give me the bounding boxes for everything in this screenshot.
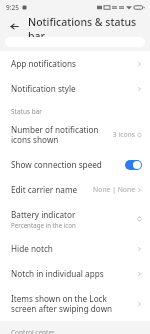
button[interactable]: Items shown on the Lock screen after swi… — [0, 286, 150, 321]
button[interactable]: Notch in individual apps — [0, 261, 150, 286]
staticText: Notch in individual apps — [11, 268, 104, 279]
staticText: None | None — [93, 185, 135, 194]
staticText: App notifications — [11, 58, 76, 69]
staticText: 3 icons — [112, 130, 135, 139]
staticText: Items shown on the Lock screen after swi… — [11, 293, 133, 314]
button[interactable]: Back — [6, 18, 22, 34]
button[interactable]: Number of notification icons shown — [0, 117, 150, 152]
staticText: Hide notch — [11, 243, 53, 254]
button[interactable]: Show connection speed — [0, 152, 150, 177]
staticText: Show connection speed — [11, 159, 125, 170]
staticText: Number of notification icons shown — [11, 124, 108, 145]
button[interactable]: Edit carrier name — [0, 177, 150, 202]
staticText: Edit carrier name — [11, 184, 78, 195]
button[interactable]: Notification style — [0, 76, 150, 101]
staticText: Notification style — [11, 83, 76, 94]
staticText: Status bar — [11, 107, 43, 116]
staticText: Battery indicator — [11, 209, 76, 220]
staticText: Notifications & status bar — [28, 15, 150, 37]
staticText: Control center — [11, 328, 55, 334]
button[interactable]: Hide notch — [0, 236, 150, 261]
staticText: 9:25 — [6, 3, 19, 12]
button[interactable]: Battery indicator — [0, 202, 150, 236]
staticText: Percentage in the icon — [11, 221, 76, 229]
button[interactable]: App notifications — [0, 51, 150, 76]
